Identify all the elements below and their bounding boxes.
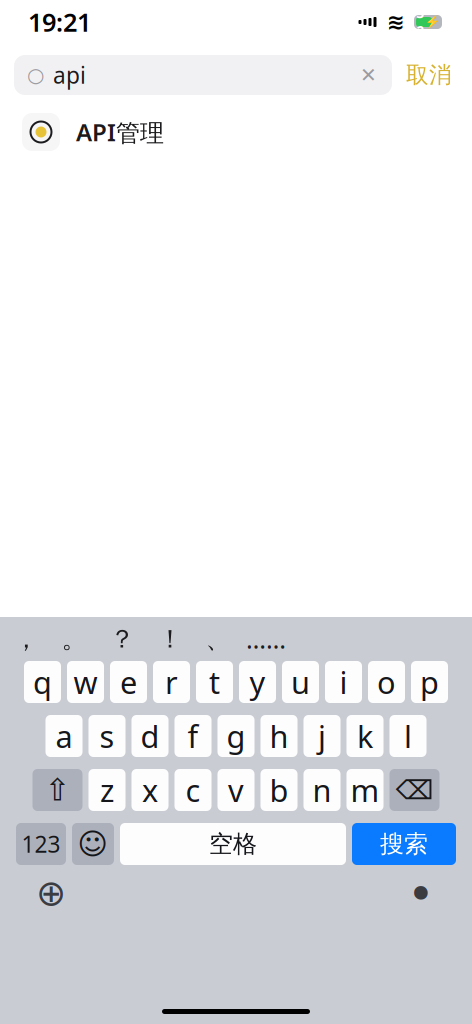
staticText: u [291, 662, 310, 702]
staticText: v [228, 770, 244, 810]
staticText: 32 [416, 4, 424, 40]
button[interactable]: API管理 [0, 104, 472, 160]
staticText: s [99, 716, 114, 756]
staticText: ⚡ [424, 15, 439, 29]
button[interactable]: ， [2, 621, 50, 657]
staticText: l [404, 716, 412, 756]
button[interactable]: Delete [389, 769, 439, 811]
staticText: c [185, 770, 200, 810]
button[interactable]: m [346, 769, 383, 811]
button[interactable]: z [88, 769, 125, 811]
button[interactable]: p [411, 661, 448, 703]
staticText: x [142, 770, 158, 810]
button[interactable]: f [174, 715, 211, 757]
button[interactable]: Emoji [72, 823, 114, 865]
staticText: 123 [21, 829, 60, 859]
staticText: api [53, 60, 86, 90]
button[interactable]: 空格 [120, 823, 346, 865]
button[interactable]: 、 [194, 621, 242, 657]
staticText: API管理 [76, 116, 164, 148]
button[interactable]: i [325, 661, 362, 703]
staticText: ☺ [77, 827, 108, 861]
staticText: o [377, 662, 396, 702]
button[interactable]: x [131, 769, 168, 811]
staticText: 。 [61, 623, 86, 654]
button[interactable]: o [368, 661, 405, 703]
staticText: h [269, 716, 288, 756]
staticText: d [140, 716, 159, 756]
staticText: w [73, 662, 97, 702]
staticText: p [420, 662, 439, 702]
staticText: ⊕ [36, 873, 66, 913]
button[interactable]: j [303, 715, 340, 757]
staticText: y [249, 662, 265, 702]
staticText: b [269, 770, 288, 810]
staticText: 取消 [406, 61, 452, 89]
button[interactable]: s [88, 715, 125, 757]
staticText: f [187, 716, 198, 756]
button[interactable]: ！ [146, 621, 194, 657]
button[interactable]: a [45, 715, 82, 757]
button[interactable]: Switch keyboard [28, 873, 74, 913]
staticText: ⌫ [395, 775, 433, 805]
staticText: ✕ [360, 64, 377, 86]
staticText: ， [13, 623, 38, 654]
staticText: t [209, 662, 220, 702]
staticText: r [165, 662, 178, 702]
button[interactable]: t [196, 661, 233, 703]
staticText: j [318, 716, 326, 756]
staticText: ○ [27, 64, 44, 86]
button[interactable]: ？ [98, 621, 146, 657]
staticText: 19:21 [28, 5, 91, 39]
button[interactable]: w [67, 661, 104, 703]
button[interactable]: 搜索 [352, 823, 456, 865]
button[interactable]: Dictation [398, 873, 444, 913]
button[interactable]: y [239, 661, 276, 703]
staticText: a [55, 716, 72, 756]
button[interactable]: d [131, 715, 168, 757]
button[interactable]: 取消 [398, 55, 460, 95]
button[interactable]: ○ [14, 55, 392, 95]
button[interactable]: n [303, 769, 340, 811]
staticText: 空格 [209, 829, 257, 859]
button[interactable]: h [260, 715, 297, 757]
staticText: z [100, 770, 114, 810]
staticText: ≋ [387, 10, 405, 34]
button[interactable]: e [110, 661, 147, 703]
staticText: n [312, 770, 331, 810]
button[interactable]: g [217, 715, 254, 757]
staticText: m [350, 770, 379, 810]
staticText: i [339, 662, 347, 702]
button[interactable]: 。 [50, 621, 98, 657]
staticText: ？ [109, 623, 134, 654]
button[interactable]: Shift [32, 769, 82, 811]
button[interactable]: q [24, 661, 61, 703]
staticText: k [357, 716, 373, 756]
button[interactable]: v [217, 769, 254, 811]
staticText: …… [246, 622, 286, 656]
staticText: e [120, 662, 137, 702]
button[interactable]: b [260, 769, 297, 811]
staticText: 、 [205, 623, 230, 654]
staticText: g [226, 716, 245, 756]
staticText: ⏺ [413, 879, 428, 907]
button[interactable]: u [282, 661, 319, 703]
staticText: q [33, 662, 52, 702]
staticText: ⇧ [44, 773, 70, 807]
button[interactable]: l [389, 715, 426, 757]
button[interactable]: c [174, 769, 211, 811]
staticText: ！ [157, 623, 182, 654]
staticText: 搜索 [380, 829, 428, 859]
button[interactable]: …… [242, 621, 290, 657]
button[interactable]: k [346, 715, 383, 757]
button[interactable]: 123 [16, 823, 66, 865]
button[interactable]: r [153, 661, 190, 703]
